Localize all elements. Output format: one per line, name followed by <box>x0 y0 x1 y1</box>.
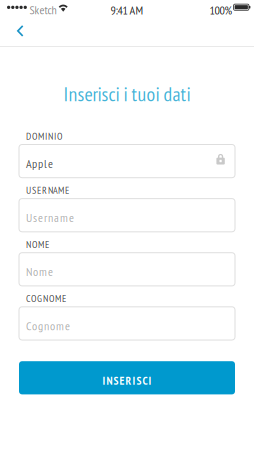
button[interactable]: U S E R N A M E <box>19 182 235 232</box>
staticText: A p p l e <box>26 156 53 171</box>
staticText: N o m e <box>26 264 53 279</box>
button[interactable]: C O G N O M E <box>19 290 235 340</box>
staticText: Sketch <box>29 2 56 17</box>
staticText: 9:41 AM <box>110 2 143 18</box>
staticText: N O M E <box>26 238 49 251</box>
staticText: I N S E R I S C I <box>102 373 151 388</box>
button[interactable]: I N S E R I S C I <box>19 361 235 394</box>
staticText: 100% <box>209 2 232 18</box>
staticText: C O G N O M E <box>26 292 66 305</box>
staticText: C o g n o m e <box>26 318 70 333</box>
button[interactable]: N O M E <box>19 236 235 286</box>
staticText: U s e r n a m e <box>26 210 74 225</box>
staticText: Inserisci i tuoi dati <box>63 81 190 107</box>
staticText: U S E R N A M E <box>26 184 69 196</box>
button[interactable]: D O M I N I O <box>19 127 235 178</box>
button[interactable]: Back <box>0 20 34 46</box>
staticText: D O M I N I O <box>26 129 62 142</box>
